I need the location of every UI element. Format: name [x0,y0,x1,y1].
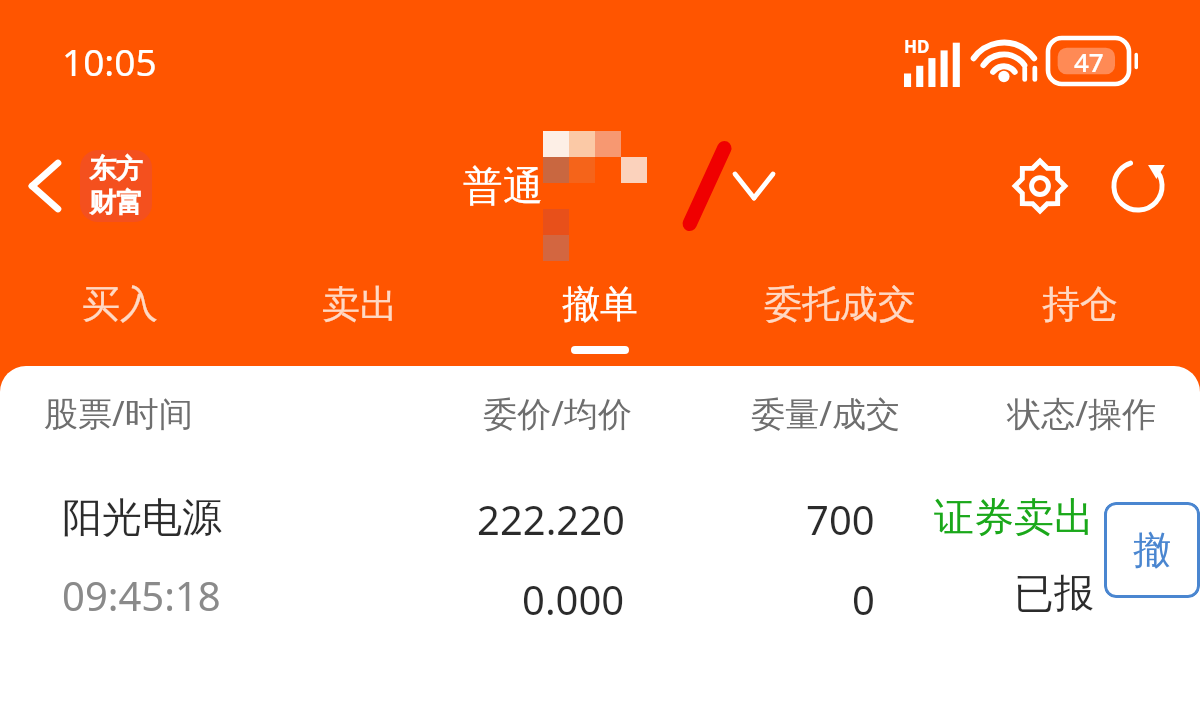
button[interactable]: 撤单 [480,250,720,366]
staticText: 已报 [1014,568,1094,618]
staticText: 222.220 [477,492,625,546]
button[interactable]: Settings [1004,150,1076,222]
staticText: 撤 [1133,526,1171,574]
staticText: 委托成交 [764,280,916,328]
button[interactable]: 委托成交 [720,250,960,366]
staticText: 状态/操作 [900,390,1156,436]
staticText: 持仓 [1042,280,1118,328]
staticText: 普通 [463,161,543,211]
staticText: 卖出 [322,280,398,328]
button[interactable]: 阳光电源 [0,492,1200,626]
button[interactable]: 买入 [0,250,240,366]
staticText: 10:05 [62,36,157,86]
staticText: 买入 [82,280,158,328]
button[interactable]: 撤 [1104,502,1200,598]
button[interactable]: 持仓 [960,250,1200,366]
staticText: 东方 [89,152,143,186]
staticText: 0.000 [522,572,625,626]
staticText: 委价/均价 [316,390,632,436]
button[interactable]: 东方 [80,150,152,222]
button[interactable]: Refresh [1102,150,1174,222]
staticText: 股票/时间 [44,390,316,436]
button[interactable]: 普通 [463,131,773,241]
staticText: 委量/成交 [632,390,900,436]
staticText: 0 [852,572,875,626]
staticText: 阳光电源 [62,492,222,542]
staticText: 证券卖出 [934,492,1094,542]
staticText: HD [904,35,930,58]
button[interactable]: Back [14,155,76,217]
staticText: 撤单 [562,280,638,328]
staticText: 47 [1074,44,1104,79]
staticText: 财富 [89,186,143,220]
button[interactable]: 卖出 [240,250,480,366]
staticText: 09:45:18 [62,568,221,622]
staticText: 700 [806,492,875,546]
